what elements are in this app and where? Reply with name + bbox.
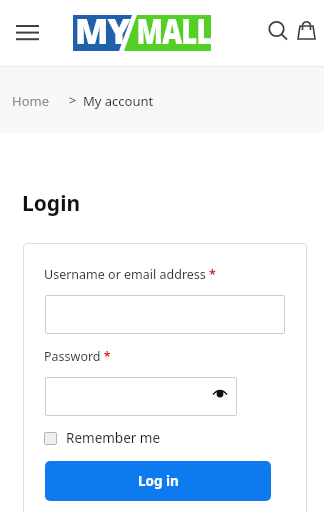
staticText: MY bbox=[75, 6, 129, 42]
staticText: Log in bbox=[138, 472, 179, 490]
staticText: MALL bbox=[137, 6, 209, 42]
staticText: Login bbox=[22, 189, 81, 218]
button[interactable]: Log in bbox=[45, 461, 271, 501]
button[interactable] bbox=[45, 377, 237, 416]
button[interactable] bbox=[10, 18, 44, 48]
staticText: > bbox=[69, 92, 77, 109]
button[interactable]: Home bbox=[12, 92, 49, 110]
staticText: Remember me bbox=[66, 429, 161, 447]
staticText: Username or email address * bbox=[44, 266, 216, 283]
staticText: Password * bbox=[44, 348, 111, 365]
button[interactable]: MY bbox=[73, 15, 211, 51]
staticText: Home bbox=[12, 92, 49, 110]
staticText: My account bbox=[83, 92, 154, 110]
button[interactable] bbox=[45, 295, 285, 334]
button[interactable] bbox=[260, 13, 292, 45]
button[interactable]: Remember me bbox=[44, 429, 161, 447]
button[interactable] bbox=[292, 13, 324, 45]
